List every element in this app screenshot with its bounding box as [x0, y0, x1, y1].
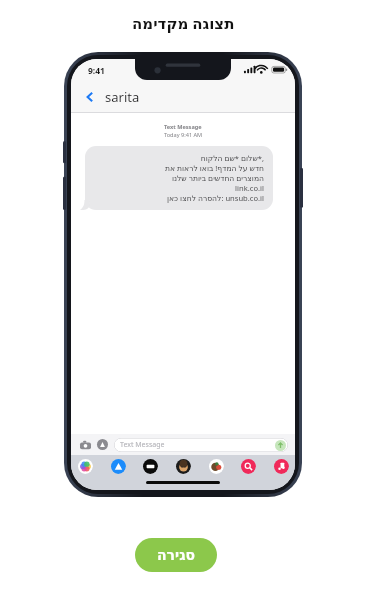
staticText: שלום *שם הלקוח*, חדש על המדף! בואו לראות…	[94, 153, 264, 203]
button[interactable]: Text Message	[114, 438, 288, 452]
button[interactable]: App Store	[110, 458, 126, 474]
staticText: תצוגה מקדימה	[132, 13, 235, 33]
button[interactable]: Memoji	[175, 458, 191, 474]
button[interactable]: Apple Pay	[142, 458, 158, 474]
button[interactable]: שלום *שם הלקוח*, חדש על המדף! בואו לראות…	[94, 153, 264, 203]
staticText: sarita	[105, 88, 140, 106]
staticText: Today 9:41 AM	[164, 131, 203, 139]
staticText: Text Message	[120, 440, 165, 450]
button[interactable]: Back	[79, 86, 101, 108]
staticText: Text Message	[164, 123, 202, 131]
button[interactable]: Photos	[77, 458, 93, 474]
button[interactable]: Images	[240, 458, 256, 474]
button[interactable]: Sticker	[208, 458, 224, 474]
button[interactable]: Music	[273, 458, 289, 474]
button[interactable]: סגירה	[135, 538, 217, 572]
button[interactable]: Camera	[78, 438, 92, 452]
button[interactable]: Apps	[96, 438, 109, 451]
button[interactable]: Send	[275, 440, 286, 451]
staticText: סגירה	[157, 547, 195, 563]
staticText: 9:41	[88, 65, 105, 77]
